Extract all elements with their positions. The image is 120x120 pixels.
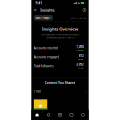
button[interactable]: Accounts engaged [0, 9, 120, 70]
button[interactable]: Accounts reached [0, 0, 120, 9]
button[interactable]: Total followers [0, 70, 120, 120]
staticText: Accounts engaged [0, 26, 53, 53]
